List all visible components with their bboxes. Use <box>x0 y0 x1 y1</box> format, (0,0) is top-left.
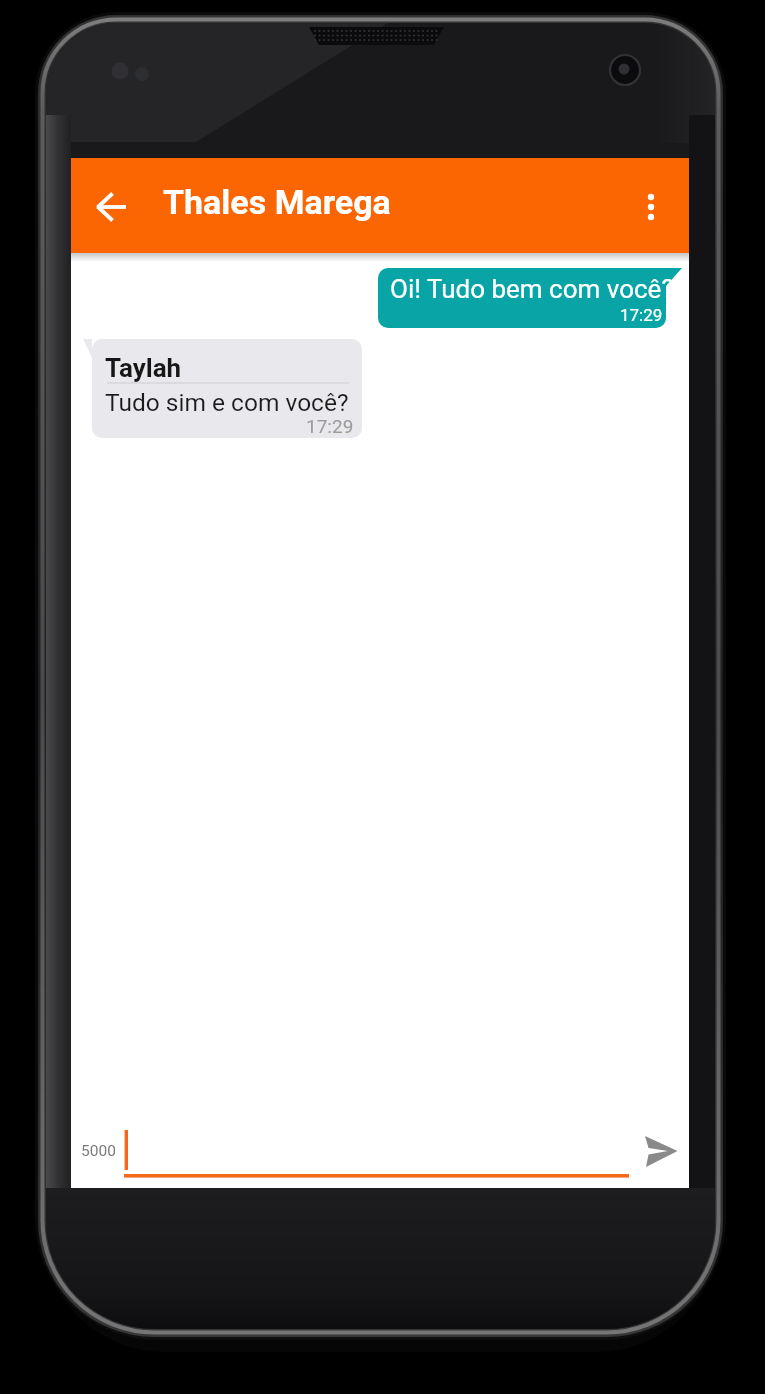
staticText: Thales Marega <box>163 182 391 222</box>
staticText: Taylah <box>105 353 182 383</box>
staticText: Tudo sim e com você? <box>105 388 349 417</box>
button[interactable] <box>627 176 675 236</box>
button[interactable]: Taylah <box>83 339 362 438</box>
button[interactable]: Oi! Tudo bem com você? <box>378 268 681 328</box>
staticText: Oi! Tudo bem com você? <box>390 274 674 304</box>
button[interactable] <box>124 1118 629 1180</box>
button[interactable] <box>84 179 140 235</box>
staticText: 5000 <box>81 1142 116 1160</box>
staticText: 17:29 <box>620 305 663 325</box>
button[interactable] <box>637 1130 683 1172</box>
staticText: 17:29 <box>306 415 354 435</box>
